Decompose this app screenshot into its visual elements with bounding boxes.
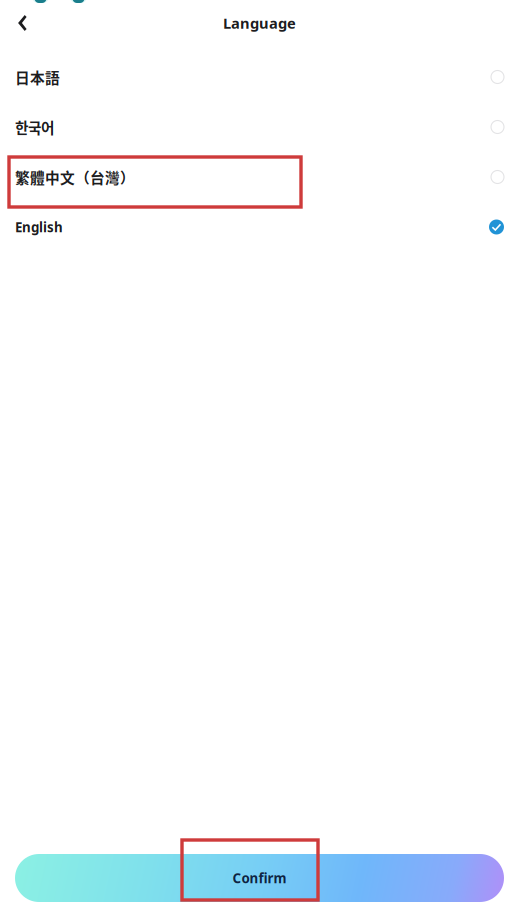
button[interactable]: English [0, 202, 519, 252]
staticText: English [15, 218, 63, 236]
button[interactable]: 繁體中文（台灣） [0, 152, 519, 202]
staticText: Language [223, 13, 296, 33]
button[interactable]: Confirm [15, 854, 504, 902]
staticText: Confirm [232, 869, 286, 887]
button[interactable]: 日本語 [0, 52, 519, 102]
staticText: 한국어 [15, 116, 54, 138]
button[interactable]: Back [0, 3, 28, 43]
staticText: 日本語 [15, 66, 60, 88]
button[interactable]: 한국어 [0, 102, 519, 152]
staticText: 繁體中文（台灣） [15, 166, 135, 188]
